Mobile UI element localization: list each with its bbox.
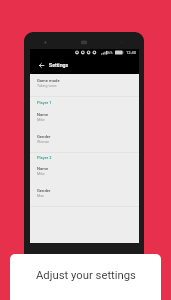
staticText: Game mode <box>37 78 60 83</box>
staticText: Mike <box>37 172 45 176</box>
staticText: Man <box>37 194 45 198</box>
staticText: Name <box>37 112 49 117</box>
button[interactable]: Gender <box>30 184 139 206</box>
button[interactable]: Name <box>30 162 139 184</box>
staticText: Name <box>37 166 49 171</box>
button[interactable]: Game mode <box>30 74 139 96</box>
button[interactable]: Back <box>35 59 47 71</box>
staticText: Player 2 <box>37 155 52 160</box>
staticText: Player 1 <box>37 100 52 105</box>
button[interactable]: Name <box>30 108 139 130</box>
staticText: 56% <box>106 51 113 55</box>
staticText: Taking turns <box>37 84 57 88</box>
staticText: Mike <box>37 118 45 122</box>
button[interactable]: Adjust your settings <box>10 254 161 300</box>
staticText: Settings <box>49 62 69 68</box>
staticText: Gender <box>37 134 51 139</box>
staticText: Gender <box>37 188 51 193</box>
button[interactable]: Gender <box>30 130 139 152</box>
staticText: Woman <box>37 140 50 144</box>
staticText: Adjust your settings <box>36 269 136 282</box>
staticText: 12:40 <box>126 50 136 55</box>
